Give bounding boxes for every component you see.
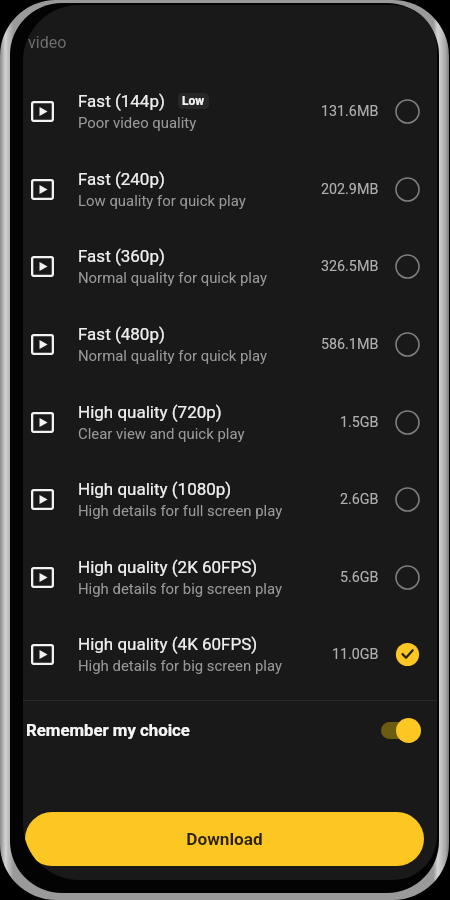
staticText: High details for big screen play: [78, 657, 282, 674]
button[interactable]: Fast (240p): [23, 150, 437, 228]
button[interactable]: Fast (144p): [23, 72, 437, 150]
staticText: 131.6MB: [321, 103, 379, 120]
staticText: 11.0GB: [332, 646, 379, 663]
button[interactable]: Download: [25, 812, 424, 866]
staticText: 586.1MB: [321, 336, 379, 353]
button[interactable]: Fast (360p): [23, 227, 437, 305]
button[interactable]: High quality (2K 60FPS): [23, 538, 437, 616]
staticText: High details for full screen play: [78, 502, 283, 519]
staticText: 202.9MB: [321, 181, 379, 198]
staticText: 2.6GB: [340, 491, 379, 508]
staticText: Low: [182, 94, 205, 108]
staticText: High details for big screen play: [78, 580, 282, 597]
staticText: 326.5MB: [321, 258, 379, 275]
button[interactable]: Fast (480p): [23, 305, 437, 383]
staticText: Remember my choice: [26, 720, 190, 740]
button[interactable]: High quality (4K 60FPS): [23, 615, 437, 693]
button[interactable]: Remember my choice: [381, 715, 420, 745]
staticText: Poor video quality: [78, 114, 197, 131]
staticText: Fast (144p): [78, 91, 165, 111]
staticText: Fast (360p): [78, 246, 165, 266]
staticText: 1.5GB: [340, 414, 379, 431]
staticText: 5.6GB: [340, 569, 379, 586]
staticText: Fast (480p): [78, 324, 165, 344]
staticText: High quality (2K 60FPS): [78, 557, 258, 577]
button[interactable]: High quality (720p): [23, 383, 437, 461]
staticText: Low quality for quick play: [78, 192, 246, 209]
staticText: Clear view and quick play: [78, 425, 245, 442]
button[interactable]: High quality (1080p): [23, 460, 437, 538]
staticText: Download: [186, 829, 263, 849]
staticText: video: [28, 33, 67, 52]
staticText: Fast (240p): [78, 169, 165, 189]
staticText: High quality (4K 60FPS): [78, 634, 258, 654]
staticText: Normal quality for quick play: [78, 347, 268, 364]
staticText: High quality (1080p): [78, 479, 232, 499]
staticText: Normal quality for quick play: [78, 269, 268, 286]
staticText: High quality (720p): [78, 402, 222, 422]
